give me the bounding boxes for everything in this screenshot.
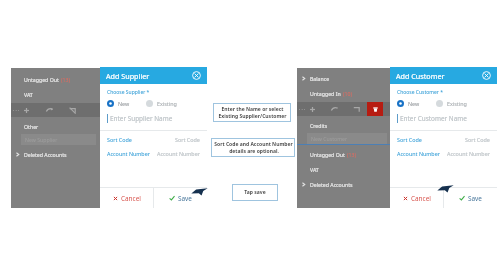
button[interactable]: Enter Supplier Name <box>107 114 200 123</box>
staticText: Account Number <box>447 150 490 157</box>
staticText: VAT <box>24 91 33 98</box>
staticText: Existing Supplier/Customer <box>218 113 287 120</box>
staticText: New Supplier <box>25 136 58 143</box>
button[interactable]: Sort Code <box>397 136 490 143</box>
staticText: Untagged In <box>310 90 341 97</box>
staticText: New <box>118 100 130 107</box>
staticText: Cancel <box>121 194 141 203</box>
button[interactable]: Other <box>11 119 100 134</box>
staticText: Sort Code <box>465 136 490 143</box>
staticText: · · · <box>299 106 305 112</box>
button[interactable]: New <box>397 100 420 107</box>
button[interactable]: Untag <box>68 106 77 115</box>
button[interactable]: Account Number <box>397 150 490 157</box>
button[interactable]: VAT <box>11 87 100 102</box>
button[interactable]: Sort Code <box>107 136 200 143</box>
staticText: Sort Code <box>397 136 422 143</box>
button[interactable]: VAT <box>297 162 391 177</box>
staticText: Save <box>178 194 192 203</box>
staticText: · · · <box>13 107 19 113</box>
staticText: Enter the Name or select <box>221 106 284 113</box>
button[interactable]: Existing <box>146 100 177 107</box>
staticText: Save <box>468 194 482 203</box>
staticText: Deleted Accounts <box>310 181 353 188</box>
button[interactable]: Save <box>444 188 497 208</box>
button[interactable]: Close <box>192 71 201 80</box>
button[interactable]: Add <box>308 105 317 114</box>
button[interactable]: New <box>107 100 130 107</box>
button[interactable]: Untagged Out <box>11 72 100 87</box>
staticText: Cancel <box>411 194 431 203</box>
staticText: details are optional. <box>229 148 279 155</box>
staticText: New Customer <box>311 135 348 142</box>
button[interactable]: Save <box>154 188 207 208</box>
staticText: Sort Code <box>175 136 200 143</box>
staticText: Tap save <box>244 189 266 196</box>
staticText: Choose Supplier * <box>107 89 150 96</box>
button[interactable]: Forward <box>45 106 54 115</box>
staticText: Untagged Out <box>310 151 345 158</box>
staticText: Add Supplier <box>106 71 150 81</box>
staticText: Untagged Out <box>24 76 59 83</box>
staticText: Balance <box>310 75 330 82</box>
staticText: Account Number <box>397 150 440 157</box>
button[interactable]: Account Number <box>107 150 200 157</box>
staticText: (10) <box>343 90 353 97</box>
button[interactable]: Close <box>482 71 491 80</box>
staticText: Account Number <box>157 150 200 157</box>
button[interactable]: Delete <box>367 102 383 116</box>
staticText: Add Customer <box>396 71 445 81</box>
button[interactable]: Balance <box>297 71 391 86</box>
staticText: Existing <box>157 100 177 107</box>
button[interactable]: Add <box>22 106 31 115</box>
button[interactable]: Enter Customer Name <box>397 114 490 123</box>
button[interactable]: Cancel <box>100 188 153 208</box>
staticText: VAT <box>310 166 319 173</box>
button[interactable]: Untagged In <box>297 86 391 101</box>
button[interactable]: Existing <box>436 100 467 107</box>
button[interactable]: Deleted Accounts <box>11 147 100 162</box>
button[interactable]: Deleted Accounts <box>297 177 391 192</box>
staticText: Deleted Accounts <box>24 151 67 158</box>
staticText: Other <box>24 123 39 130</box>
button[interactable]: Cancel <box>390 188 443 208</box>
staticText: Choose Customer * <box>397 89 443 96</box>
staticText: Account Number <box>107 150 150 157</box>
button[interactable]: Forward <box>330 105 339 114</box>
staticText: Credits <box>310 122 328 129</box>
button[interactable]: Untagged Out <box>297 147 391 162</box>
staticText: Sort Code <box>107 136 132 143</box>
button[interactable]: Untag <box>352 105 361 114</box>
staticText: New <box>408 100 420 107</box>
staticText: Existing <box>447 100 467 107</box>
staticText: Enter Supplier Name <box>110 114 173 123</box>
staticText: Enter Customer Name <box>400 114 467 123</box>
button[interactable]: Credits <box>297 118 391 133</box>
staticText: (13) <box>347 151 357 158</box>
staticText: Sort Code and Account Number <box>214 141 293 148</box>
staticText: (13) <box>61 76 71 83</box>
